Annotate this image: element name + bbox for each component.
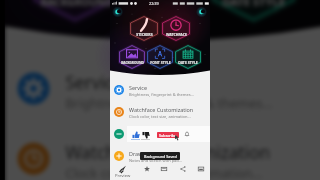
staticText: Background Saved [144, 154, 177, 159]
staticText: Clock color, text size, animation... [65, 165, 263, 180]
button[interactable]: STICKERS [129, 15, 159, 42]
staticText: Brightness, fingerprint & themes... [129, 92, 194, 97]
button[interactable]: Notifications [184, 131, 190, 137]
staticText: Preview [115, 173, 131, 179]
button[interactable]: Favourite [143, 165, 151, 173]
button[interactable]: DATE STYLE [209, 0, 298, 25]
button[interactable]: Gallery [197, 165, 205, 173]
button[interactable]: Drawing [110, 145, 210, 167]
button[interactable]: BACKGROUND [118, 44, 146, 70]
button[interactable]: Preview [114, 165, 132, 179]
staticText: 22:39 [149, 1, 159, 6]
button[interactable]: Screenshot [160, 165, 168, 173]
staticText: Drawing [129, 150, 151, 157]
staticText: BACKGROUND [40, 0, 113, 9]
staticText: BACKGROUND [121, 61, 144, 65]
button[interactable]: Subscribe [157, 132, 179, 138]
button[interactable]: Watchface Customization [110, 101, 210, 123]
staticText: Service [65, 69, 123, 92]
button[interactable]: Dislike [142, 131, 150, 139]
staticText: DATE STYLE [222, 0, 285, 9]
button[interactable]: FONT STYLE [146, 44, 174, 70]
staticText: Watchface Customization [65, 139, 273, 162]
staticText: WATCHFACE [166, 32, 187, 37]
staticText: FONT STYLE [132, 0, 199, 9]
staticText: DATE STYLE [178, 60, 198, 65]
button[interactable]: Share [179, 165, 187, 173]
button[interactable]: WATCHFACE [161, 15, 191, 42]
button[interactable]: Service [5, 53, 320, 124]
staticText: Notes and sketch with pad... [129, 158, 183, 163]
button[interactable]: Service [110, 79, 210, 101]
staticText: Subscribe [159, 133, 177, 138]
button[interactable]: Like [132, 131, 140, 139]
staticText: Watchface Customization [129, 106, 194, 113]
button[interactable]: BACKGROUND [30, 0, 120, 25]
staticText: FONT STYLE [150, 60, 171, 65]
staticText: Display [129, 128, 148, 135]
staticText: Service [129, 84, 147, 91]
button[interactable]: FONT STYLE [120, 0, 209, 25]
staticText: STICKERS [136, 32, 153, 37]
staticText: Clock color, text size, animation... [129, 114, 191, 119]
button[interactable]: DATE STYLE [174, 44, 202, 70]
staticText: Brightness, fingerprint & themes... [65, 95, 273, 111]
staticText: Screen mode, refresh rate, font... [129, 136, 191, 141]
button[interactable]: Display [110, 123, 210, 145]
button[interactable]: Watchface Customization [5, 124, 320, 180]
